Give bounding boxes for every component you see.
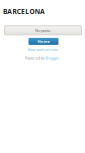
button[interactable]: Home — [27, 38, 57, 45]
staticText: No posts. — [35, 28, 51, 33]
staticText: Powered by — [24, 55, 45, 60]
staticText: Blogger — [45, 55, 59, 60]
staticText: View web version — [27, 47, 57, 52]
button[interactable]: View web version — [27, 47, 57, 52]
button[interactable]: Blogger — [45, 55, 59, 60]
staticText: BARCELONA — [3, 7, 45, 16]
staticText: Home — [37, 39, 49, 44]
